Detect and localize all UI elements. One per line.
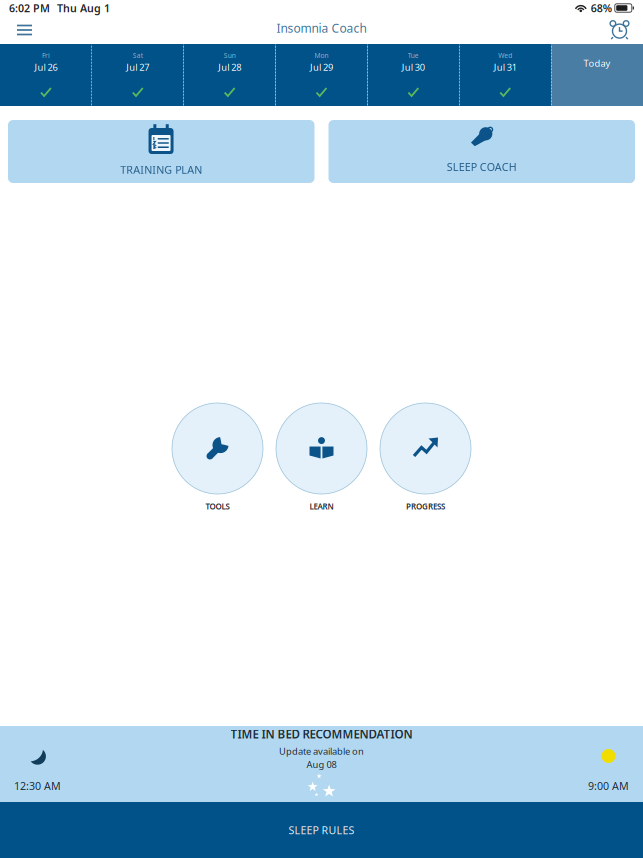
staticText: LEARN bbox=[309, 501, 333, 512]
staticText: Aug 08 bbox=[306, 758, 336, 771]
staticText: Insomnia Coach bbox=[276, 20, 366, 36]
staticText: TOOLS bbox=[205, 501, 229, 512]
button[interactable]: Tue bbox=[367, 44, 459, 106]
button[interactable]: Menu bbox=[5, 17, 44, 42]
button[interactable]: TOOLS bbox=[172, 403, 263, 512]
staticText: Today bbox=[584, 57, 611, 69]
staticText: 6:02 PM bbox=[9, 1, 50, 15]
staticText: Fri bbox=[42, 51, 50, 60]
button[interactable]: Wed bbox=[459, 44, 551, 106]
staticText: Update available on bbox=[279, 745, 364, 757]
button[interactable]: Mon bbox=[276, 44, 367, 106]
staticText: 12:30 AM bbox=[14, 779, 61, 793]
staticText: Jul 28 bbox=[218, 61, 241, 73]
staticText: Jul 26 bbox=[34, 61, 57, 73]
staticText: Thu Aug 1 bbox=[57, 1, 110, 15]
staticText: 68% bbox=[591, 1, 612, 15]
staticText: Sat bbox=[133, 51, 143, 60]
button[interactable]: Fri bbox=[0, 44, 92, 106]
staticText: Wed bbox=[498, 51, 512, 60]
button[interactable]: SLEEP RULES bbox=[0, 802, 643, 858]
staticText: Jul 27 bbox=[126, 61, 149, 73]
staticText: PROGRESS bbox=[406, 501, 445, 512]
staticText: Jul 30 bbox=[402, 61, 425, 73]
staticText: 9:00 AM bbox=[588, 779, 629, 793]
staticText: SLEEP RULES bbox=[288, 823, 354, 837]
staticText: TIME IN BED RECOMMENDATION bbox=[230, 726, 412, 742]
button[interactable]: Sat bbox=[92, 44, 184, 106]
staticText: SLEEP COACH bbox=[447, 160, 517, 174]
staticText: Sun bbox=[224, 51, 236, 60]
button[interactable]: SLEEP COACH bbox=[328, 120, 635, 183]
staticText: TRAINING PLAN bbox=[120, 162, 202, 177]
button[interactable]: Sun bbox=[184, 44, 276, 106]
staticText: Tue bbox=[408, 51, 419, 60]
button[interactable]: TRAINING PLAN bbox=[8, 120, 314, 183]
staticText: Jul 31 bbox=[494, 61, 517, 73]
staticText: Mon bbox=[314, 51, 328, 60]
button[interactable]: PROGRESS bbox=[380, 403, 471, 512]
staticText: Jul 29 bbox=[310, 61, 333, 73]
button[interactable]: Alarm bbox=[601, 16, 638, 43]
button[interactable]: LEARN bbox=[276, 403, 367, 512]
button[interactable]: Today bbox=[551, 44, 643, 106]
